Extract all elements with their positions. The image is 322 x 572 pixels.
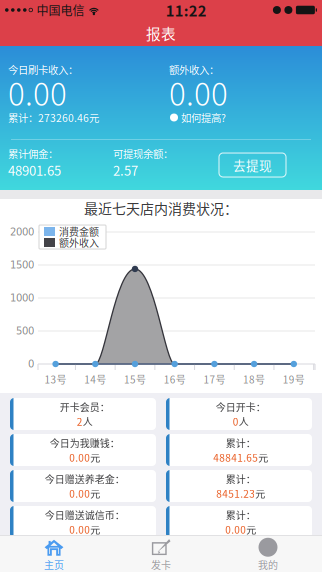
staticText: 去提现: [233, 156, 272, 174]
button[interactable]: 今日赠送养老金：: [10, 470, 156, 502]
staticText: 元: [246, 522, 256, 537]
staticText: 2.57: [113, 160, 138, 179]
staticText: 今日开卡：: [216, 400, 266, 414]
staticText: 13号: [45, 372, 67, 386]
staticText: 累计：: [226, 508, 256, 522]
staticText: 0.00: [225, 522, 246, 537]
staticText: 14号: [84, 372, 106, 386]
staticText: 0: [233, 414, 239, 429]
staticText: 0.00: [69, 522, 90, 537]
staticText: 如何提高?: [181, 110, 226, 125]
staticText: 48841.65: [213, 450, 258, 465]
staticText: 累计：: [226, 472, 256, 486]
staticText: 今日赠送诚信币：: [45, 508, 125, 522]
staticText: 15号: [124, 372, 146, 386]
staticText: 1000: [10, 292, 34, 304]
staticText: 最近七天店内消费状况：: [84, 198, 238, 218]
staticText: 今日为我赚钱：: [50, 436, 120, 450]
button[interactable]: 累计：: [166, 506, 312, 538]
staticText: 额外收入：: [169, 62, 219, 77]
staticText: 消费金额: [59, 224, 99, 239]
button[interactable]: 今日为我赚钱：: [10, 434, 156, 466]
staticText: 额外收入: [59, 235, 99, 250]
staticText: 元: [90, 450, 100, 465]
button[interactable]: 今日赠送诚信币：: [10, 506, 156, 538]
staticText: 8451.23: [216, 486, 255, 501]
staticText: 0: [28, 358, 34, 370]
staticText: 人: [83, 414, 93, 429]
staticText: 17号: [203, 372, 225, 386]
staticText: 48901.65: [8, 160, 61, 179]
staticText: 报表: [146, 22, 176, 44]
button[interactable]: 去提现: [219, 153, 286, 177]
button[interactable]: 如何提高?: [170, 112, 226, 123]
staticText: 16号: [164, 372, 186, 386]
staticText: 中国电信: [36, 1, 84, 19]
button[interactable]: 累计：: [166, 434, 312, 466]
staticText: 0.00: [8, 69, 67, 115]
button[interactable]: 发卡: [107, 536, 214, 572]
staticText: 开卡会员：: [60, 400, 110, 414]
staticText: 11:22: [166, 0, 207, 21]
staticText: 0.00: [69, 486, 90, 501]
staticText: 元: [258, 450, 268, 465]
button[interactable]: 我的: [214, 536, 321, 572]
staticText: 今日刷卡收入：: [8, 62, 78, 77]
staticText: 发卡: [151, 557, 171, 572]
staticText: 元: [90, 522, 100, 537]
staticText: 0.00: [169, 69, 228, 115]
staticText: 今日赠送养老金：: [45, 472, 125, 486]
staticText: 2: [77, 414, 83, 429]
staticText: 累计：: [226, 436, 256, 450]
staticText: 可提现余额：: [113, 146, 173, 161]
staticText: 元: [255, 486, 265, 501]
staticText: 19号: [283, 372, 305, 386]
staticText: 人: [239, 414, 249, 429]
staticText: 18号: [243, 372, 265, 386]
button[interactable]: 主页: [0, 536, 107, 572]
staticText: 2000: [10, 226, 34, 238]
button[interactable]: 今日开卡：: [166, 398, 312, 430]
staticText: 500: [16, 325, 34, 337]
staticText: 累计佣金：: [8, 146, 58, 161]
staticText: 累计：273260.46元: [8, 110, 99, 125]
staticText: 我的: [258, 557, 278, 572]
staticText: 1500: [10, 259, 34, 271]
button[interactable]: 开卡会员：: [10, 398, 156, 430]
button[interactable]: 累计：: [166, 470, 312, 502]
staticText: 主页: [44, 557, 64, 572]
staticText: 元: [90, 486, 100, 501]
staticText: 0.00: [69, 450, 90, 465]
